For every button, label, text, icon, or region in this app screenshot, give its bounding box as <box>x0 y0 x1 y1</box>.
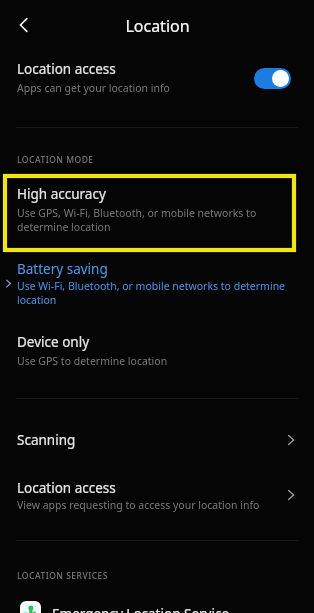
button[interactable]: Toggle location access <box>254 68 291 89</box>
staticText: LOCATION SERVICES <box>17 570 108 582</box>
staticText: High accuracy <box>17 185 106 203</box>
staticText: Use GPS to determine location <box>17 354 168 368</box>
button[interactable]: Scanning <box>0 418 314 462</box>
button[interactable]: Device only <box>0 333 314 377</box>
button[interactable]: Location access <box>0 468 314 520</box>
button[interactable]: Battery saving <box>0 258 314 314</box>
button[interactable]: High accuracy <box>0 185 314 245</box>
staticText: Location <box>125 15 190 37</box>
staticText: Location access <box>17 60 116 78</box>
button[interactable]: Location access <box>0 52 314 100</box>
staticText: Location access <box>17 479 116 497</box>
staticText: Use GPS, Wi-Fi, Bluetooth, or mobile net… <box>17 206 267 234</box>
staticText: Emergency Location Service <box>52 605 230 613</box>
staticText: View apps requesting to access your loca… <box>17 498 260 512</box>
staticText: LOCATION MODE <box>17 154 94 166</box>
button[interactable]: Back <box>10 11 38 39</box>
staticText: Apps can get your location info <box>17 81 170 95</box>
button[interactable]: Emergency Location Service <box>0 592 314 613</box>
staticText: Device only <box>17 333 90 351</box>
staticText: Scanning <box>17 431 76 449</box>
staticText: Battery saving <box>17 260 108 278</box>
staticText: Use Wi-Fi, Bluetooth, or mobile networks… <box>17 279 293 307</box>
